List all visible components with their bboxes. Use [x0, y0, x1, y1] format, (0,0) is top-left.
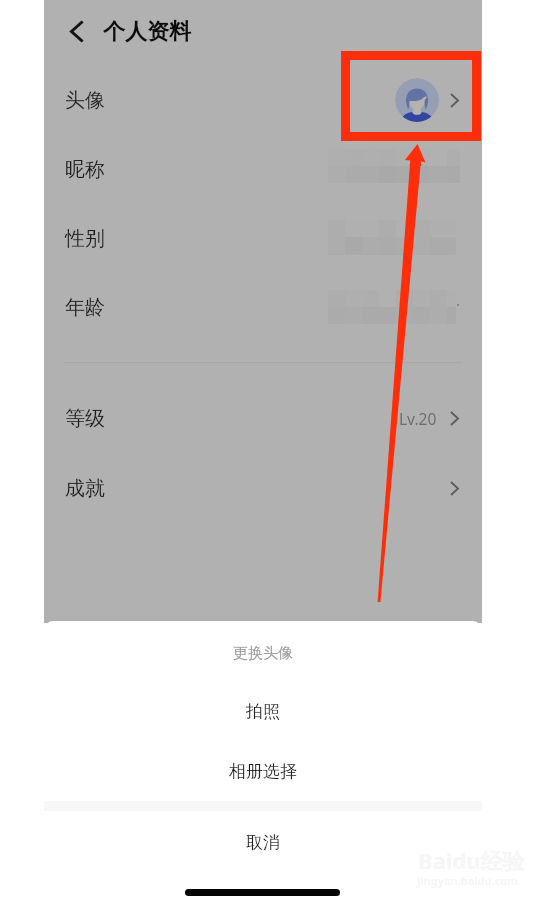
staticText: 年龄 [65, 295, 105, 320]
staticText: 昵称 [65, 157, 105, 182]
button[interactable]: Back [52, 7, 100, 55]
button[interactable]: 拍照 [44, 681, 482, 741]
button[interactable]: 相册选择 [44, 742, 482, 800]
staticText: jingyan.baidu.com [417, 873, 519, 888]
staticText: 拍照 [246, 701, 280, 722]
button[interactable]: 更换头像 [44, 622, 482, 684]
button[interactable]: 年龄 [44, 277, 482, 337]
button[interactable]: 性别 [44, 208, 482, 268]
staticText: 个人资料 [103, 18, 191, 46]
button[interactable]: 取消 [44, 812, 482, 873]
staticText: 相册选择 [229, 761, 297, 782]
staticText: Lv.20 [399, 408, 437, 429]
button[interactable]: 成就 [44, 458, 482, 518]
staticText: 等级 [65, 406, 105, 431]
staticText: Baidu经验 [418, 845, 525, 875]
button[interactable]: 等级 [44, 388, 482, 448]
staticText: 性别 [65, 226, 105, 251]
staticText: 更换头像 [233, 644, 293, 663]
staticText: 成就 [65, 476, 105, 501]
button[interactable]: 昵称 [44, 139, 482, 199]
staticText: 取消 [246, 832, 280, 853]
staticText: 头像 [65, 88, 105, 113]
button[interactable]: 头像 [44, 70, 482, 130]
